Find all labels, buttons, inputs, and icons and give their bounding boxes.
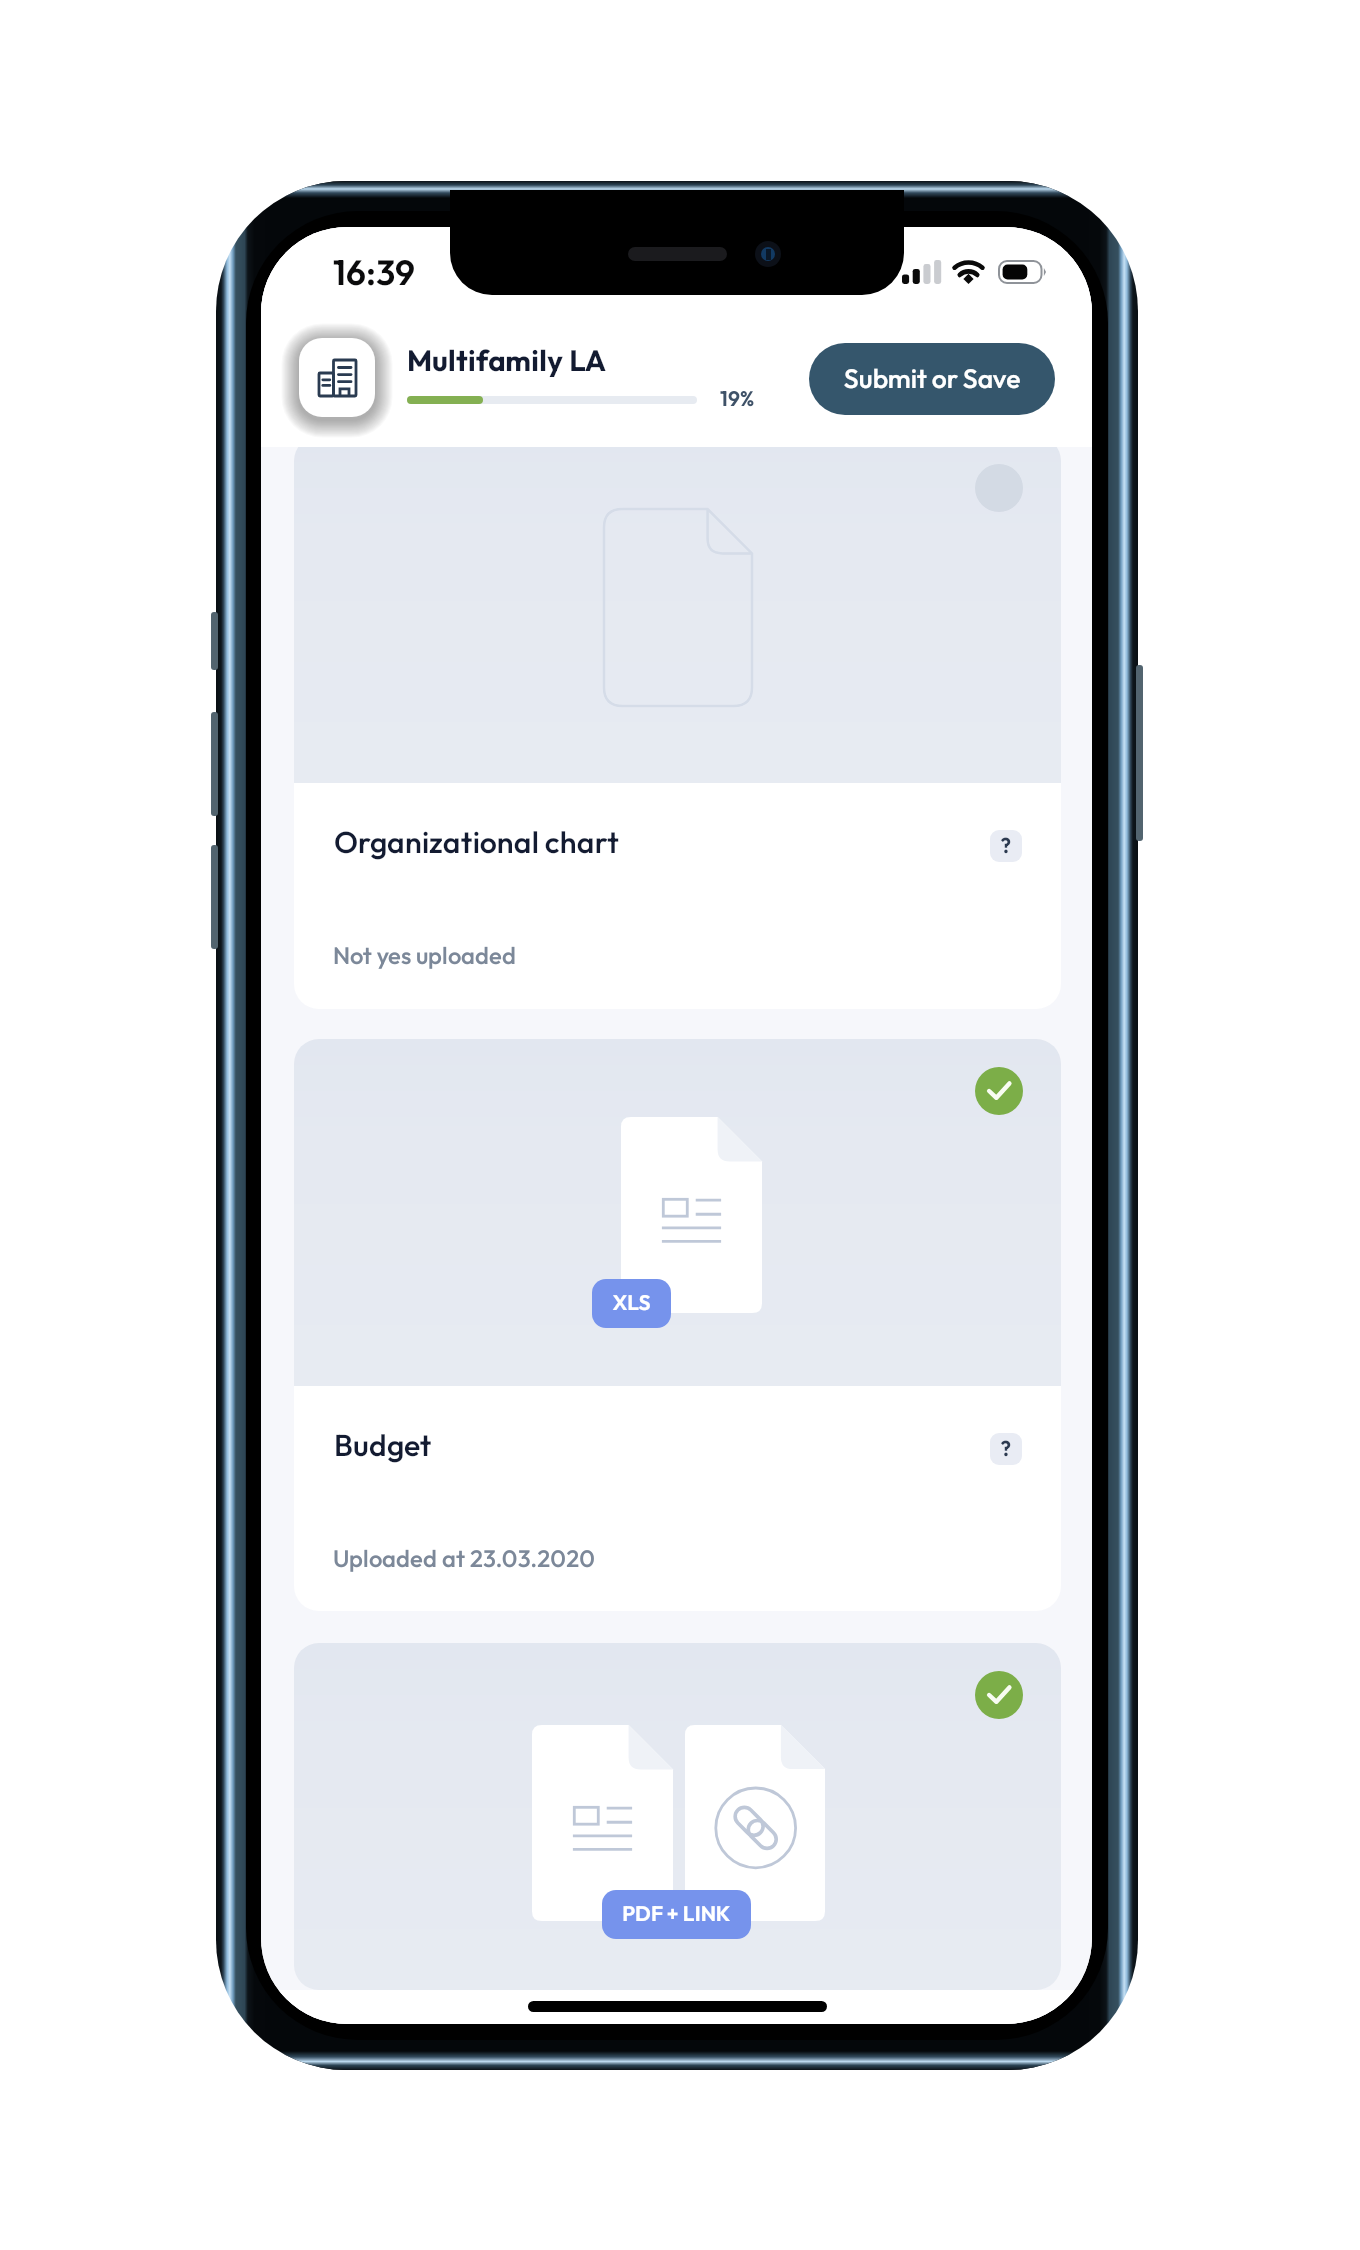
button[interactable]: Help: [990, 830, 1022, 862]
button[interactable]: Project: [299, 338, 375, 417]
button[interactable]: Completed: [975, 1067, 1023, 1115]
button[interactable]: Completed: [294, 1643, 1061, 1990]
button[interactable]: Completed: [294, 1039, 1061, 1611]
button[interactable]: Not uploaded: [294, 436, 1061, 1009]
button[interactable]: [809, 343, 1055, 415]
button[interactable]: Help: [990, 1433, 1022, 1465]
button[interactable]: Not uploaded: [975, 464, 1023, 512]
button[interactable]: Completed: [975, 1671, 1023, 1719]
